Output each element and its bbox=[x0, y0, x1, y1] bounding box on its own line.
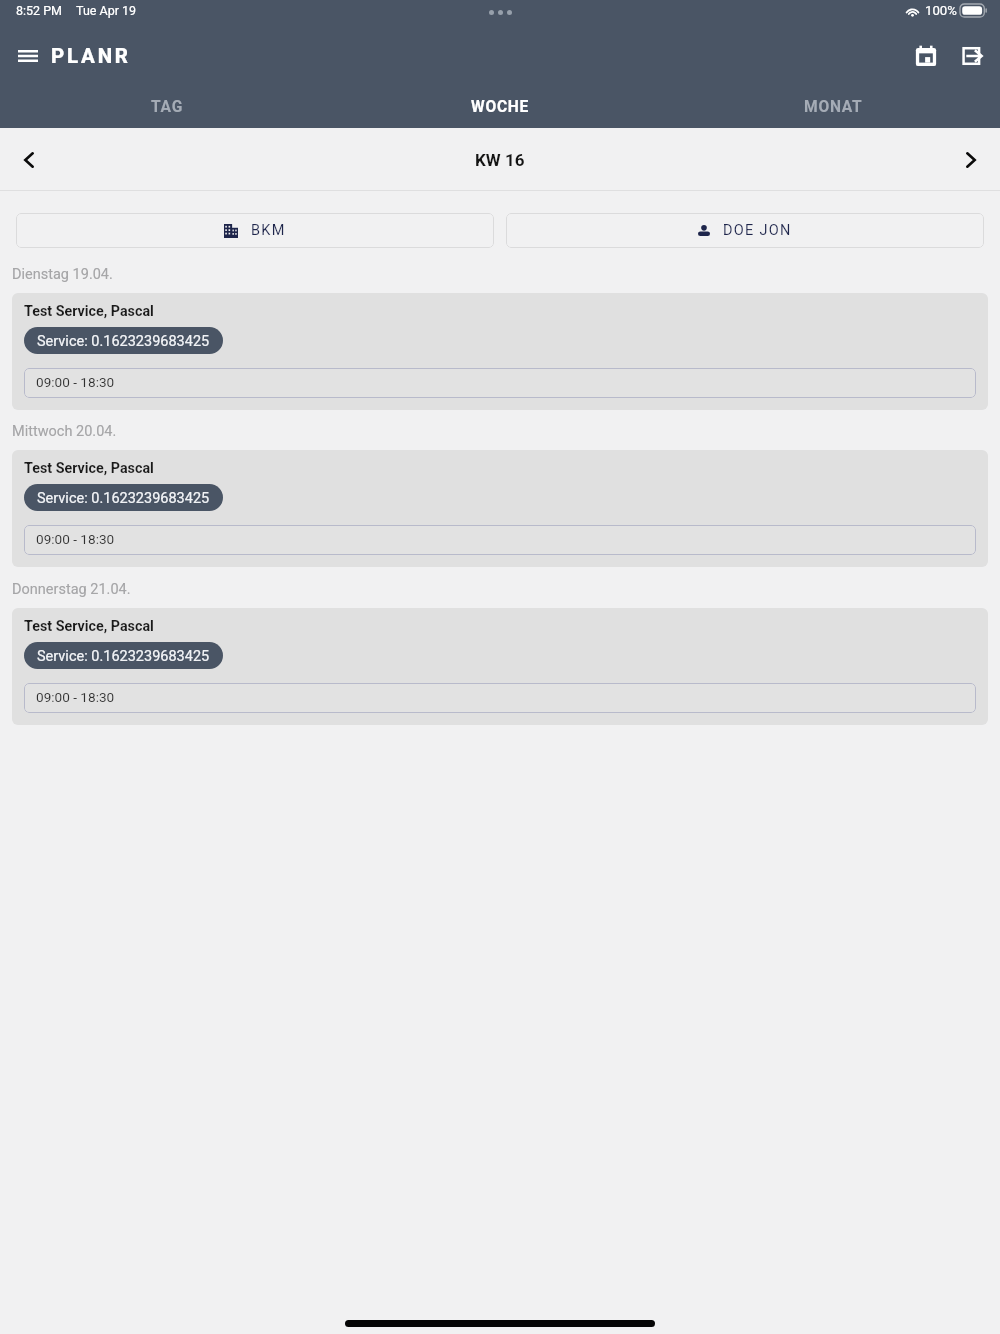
staticText: Test Service, Pascal bbox=[24, 303, 154, 320]
staticText: Test Service, Pascal bbox=[24, 618, 154, 635]
staticText: TAG bbox=[151, 98, 184, 116]
button[interactable]: MONAT bbox=[667, 84, 1000, 128]
staticText: Dienstag 19.04. bbox=[12, 266, 113, 283]
button[interactable]: TAG bbox=[0, 84, 334, 128]
staticText: Service: 0.1623239683425 bbox=[37, 648, 210, 665]
staticText: PLANR bbox=[51, 44, 131, 68]
staticText: Test Service, Pascal bbox=[24, 460, 154, 477]
button[interactable]: Next week bbox=[942, 129, 1000, 191]
button[interactable]: Log out bbox=[949, 33, 995, 79]
staticText: Donnerstag 21.04. bbox=[12, 581, 131, 598]
staticText: 100% bbox=[925, 3, 957, 18]
staticText: Tue Apr 19 bbox=[76, 3, 137, 18]
staticText: Service: 0.1623239683425 bbox=[37, 333, 210, 350]
button[interactable]: WOCHE bbox=[334, 84, 667, 128]
staticText: KW 16 bbox=[475, 150, 525, 170]
staticText: 09:00 - 18:30 bbox=[36, 531, 115, 547]
button[interactable]: DOE JON bbox=[506, 213, 984, 248]
staticText: BKM bbox=[251, 222, 286, 239]
button[interactable]: Test Service, Pascal bbox=[12, 608, 988, 725]
button[interactable]: BKM bbox=[16, 213, 494, 248]
button[interactable]: Calendar bbox=[903, 33, 949, 79]
button[interactable]: Test Service, Pascal bbox=[12, 450, 988, 567]
staticText: WOCHE bbox=[471, 98, 530, 116]
staticText: 09:00 - 18:30 bbox=[36, 689, 115, 705]
staticText: MONAT bbox=[804, 98, 863, 116]
staticText: DOE JON bbox=[723, 222, 792, 239]
button[interactable]: Previous week bbox=[0, 129, 58, 191]
staticText: Service: 0.1623239683425 bbox=[37, 490, 210, 507]
button[interactable]: Open navigation menu bbox=[5, 33, 51, 79]
staticText: Mittwoch 20.04. bbox=[12, 423, 117, 440]
button[interactable]: Test Service, Pascal bbox=[12, 293, 988, 410]
staticText: 8:52 PM bbox=[16, 3, 63, 18]
staticText: 09:00 - 18:30 bbox=[36, 374, 115, 390]
